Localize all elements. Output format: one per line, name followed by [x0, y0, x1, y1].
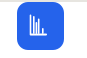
button[interactable]: Analytics	[17, 2, 64, 50]
